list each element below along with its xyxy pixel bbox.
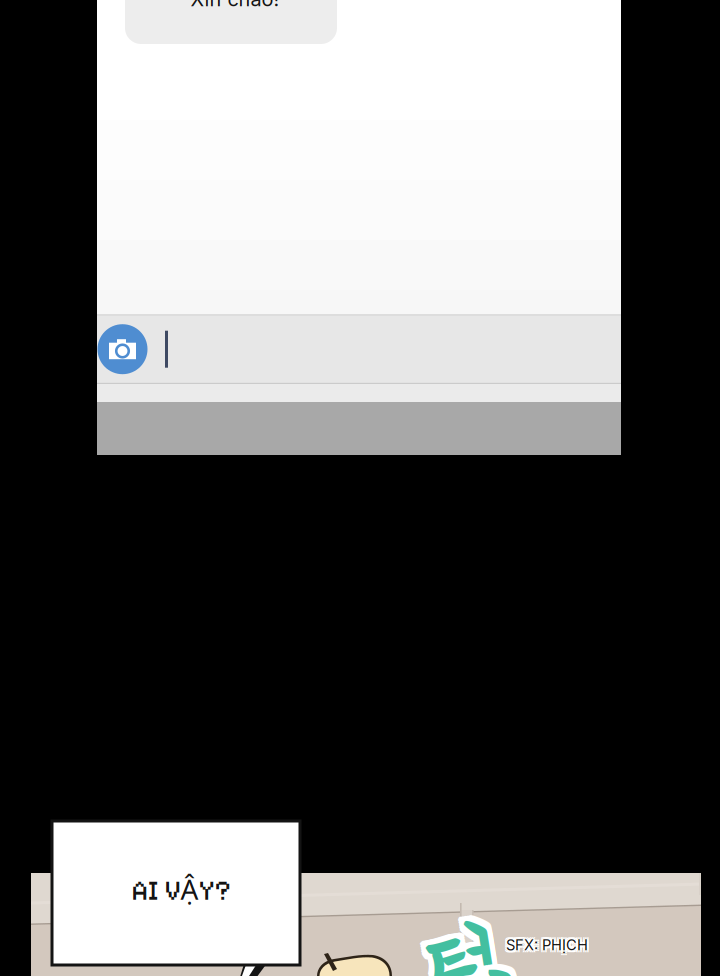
staticText: SFX: PHỊCH (508, 938, 590, 956)
staticText: 털 (429, 915, 501, 976)
staticText: 썩 (453, 963, 528, 976)
staticText: SFX: PHỊCH (504, 936, 586, 954)
staticText: SFX: PHỊCH (506, 934, 588, 952)
staticText: 털 (426, 920, 498, 976)
staticText: 털 (431, 923, 503, 976)
staticText: SFX: PHỊCH (508, 936, 590, 954)
staticText: SFX: PHỊCH (504, 934, 586, 952)
staticText: AI VẬY? (131, 870, 230, 908)
staticText: 썩 (448, 963, 523, 976)
staticText: 썩 (453, 960, 528, 976)
button[interactable]: Take photo (97, 316, 148, 383)
staticText: 썩 (453, 970, 528, 976)
staticText: 털 (424, 915, 496, 976)
staticText: 썩 (455, 965, 530, 976)
staticText: 털 (424, 918, 496, 976)
staticText: 썩 (455, 963, 530, 976)
staticText: 털 (426, 918, 498, 976)
staticText: 털 (426, 915, 498, 976)
staticText: 털 (434, 920, 506, 976)
staticText: 썩 (455, 960, 530, 976)
staticText: 썩 (448, 960, 523, 976)
staticText: 썩 (448, 968, 523, 976)
staticText: 털 (426, 923, 498, 976)
staticText: 썩 (450, 970, 525, 976)
staticText: 썩 (445, 965, 520, 976)
staticText: 썩 (450, 965, 525, 976)
staticText: 털 (431, 920, 503, 976)
staticText: 털 (424, 923, 496, 976)
staticText: 털 (431, 925, 503, 976)
staticText: 털 (434, 915, 506, 976)
staticText: 털 (429, 918, 501, 976)
staticText: 털 (429, 920, 501, 976)
staticText: 털 (426, 925, 498, 976)
staticText: 썩 (450, 963, 525, 976)
staticText: SFX: PHỊCH (506, 936, 588, 954)
staticText: SFX: PHỊCH (506, 938, 588, 956)
staticText: 털 (429, 923, 501, 976)
staticText: SFX: PHỊCH (506, 936, 588, 954)
staticText: 썩 (450, 968, 525, 976)
staticText: 썩 (448, 965, 523, 976)
staticText: 털 (429, 925, 501, 976)
staticText: 썩 (455, 968, 530, 976)
staticText: 썩 (445, 970, 520, 976)
staticText: 털 (429, 920, 501, 976)
staticText: 털 (431, 915, 503, 976)
staticText: 털 (424, 925, 496, 976)
staticText: 털 (434, 925, 506, 976)
staticText: 썩 (450, 960, 525, 976)
staticText: SFX: PHỊCH (504, 938, 586, 956)
staticText: 썩 (455, 970, 530, 976)
staticText: 썩 (445, 963, 520, 976)
staticText: 썩 (453, 965, 528, 976)
staticText: 털 (434, 923, 506, 976)
staticText: 썩 (448, 970, 523, 976)
staticText: 썩 (450, 965, 525, 976)
staticText: 썩 (445, 960, 520, 976)
staticText: 썩 (453, 968, 528, 976)
staticText: 털 (424, 920, 496, 976)
staticText: 털 (434, 918, 506, 976)
staticText: 썩 (445, 968, 520, 976)
staticText: 털 (431, 918, 503, 976)
staticText: Xin chào! (190, 0, 279, 11)
staticText: SFX: PHỊCH (508, 934, 590, 952)
